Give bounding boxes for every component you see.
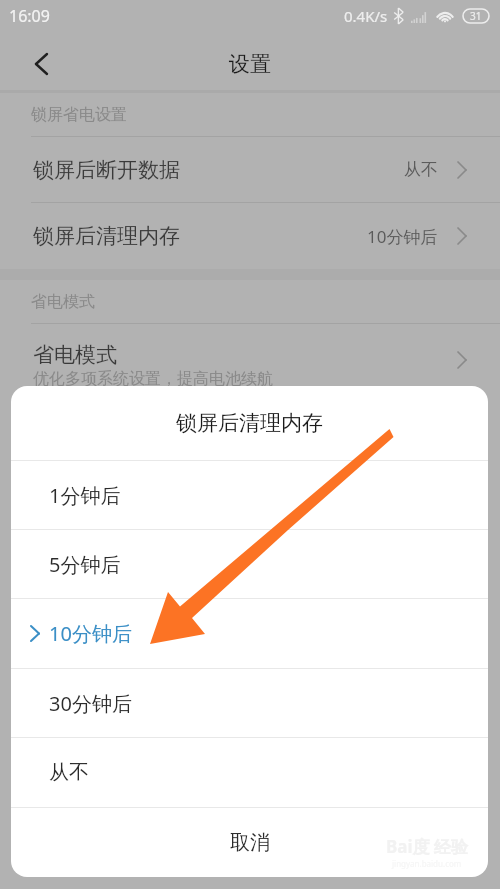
button[interactable]: 10分钟后: [11, 599, 488, 668]
staticText: Bai度 经验: [386, 835, 468, 858]
staticText: 锁屏后清理内存: [33, 223, 180, 249]
staticText: 锁屏省电设置: [31, 105, 127, 125]
staticText: 从不: [404, 159, 438, 180]
staticText: 锁屏后清理内存: [176, 410, 323, 436]
button[interactable]: 省电模式: [0, 324, 500, 402]
staticText: 0.4K/s: [344, 6, 388, 26]
staticText: 10分钟后: [367, 225, 438, 248]
button[interactable]: 30分钟后: [11, 669, 488, 737]
staticText: 30分钟后: [49, 690, 132, 717]
staticText: 设置: [229, 51, 271, 77]
button[interactable]: 从不: [11, 738, 488, 807]
staticText: jingyan.baidu.com: [392, 858, 462, 869]
staticText: 省电模式: [33, 342, 117, 368]
staticText: 锁屏后断开数据: [33, 157, 180, 183]
staticText: 取消: [230, 830, 270, 855]
button[interactable]: 锁屏后断开数据: [0, 137, 500, 202]
button[interactable]: Back: [24, 47, 58, 81]
button[interactable]: 锁屏后清理内存: [0, 203, 500, 269]
staticText: 31: [470, 9, 482, 23]
staticText: 省电模式: [31, 292, 95, 312]
staticText: 1分钟后: [49, 482, 121, 509]
staticText: 优化多项系统设置，提高电池续航: [33, 369, 273, 389]
button[interactable]: 5分钟后: [11, 530, 488, 598]
staticText: 从不: [49, 760, 89, 785]
staticText: 16:09: [9, 5, 50, 27]
button[interactable]: 取消: [11, 808, 488, 877]
button[interactable]: 1分钟后: [11, 461, 488, 529]
staticText: 5分钟后: [49, 551, 121, 578]
staticText: 10分钟后: [49, 620, 132, 647]
